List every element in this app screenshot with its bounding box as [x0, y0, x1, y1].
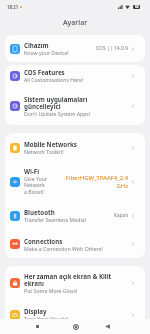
staticText: Don't Update System Apps!	[24, 110, 91, 117]
staticText: Wi-Fi	[24, 167, 40, 175]
button[interactable]: Bluetooth	[5, 201, 145, 230]
staticText: Know your Device!	[24, 49, 69, 56]
button[interactable]: Sistem uygulamaları güncelleyici	[5, 86, 145, 125]
button[interactable]: Her zaman açık ekran & Kilit ekranı	[5, 266, 145, 300]
staticText: Ayarlar	[63, 18, 88, 28]
staticText: Put Some More Gloss!	[24, 287, 78, 294]
staticText: Mobile Networks	[24, 140, 77, 148]
staticText: COS || 14.0.9	[95, 45, 128, 52]
button[interactable]: Mobile Networks	[5, 133, 145, 162]
staticText: 58	[135, 5, 139, 9]
button[interactable]: Recents	[30, 319, 45, 334]
staticText: Sistem uygulamaları güncelleyici	[24, 95, 119, 110]
staticText: Cihazım	[24, 41, 49, 49]
button[interactable]: COS Features	[5, 65, 145, 86]
button[interactable]: Display	[5, 300, 145, 329]
staticText: All Customisations Here!	[24, 76, 84, 83]
button[interactable]: Connections	[5, 230, 145, 258]
staticText: COS Features	[24, 68, 65, 76]
button[interactable]: Home	[68, 319, 83, 334]
staticText: Tune Your Visuals!	[24, 315, 69, 322]
staticText: Bluetooth	[24, 208, 55, 216]
staticText: Make a Connection With Others!	[24, 245, 103, 252]
staticText: Give Your Network a Boost!	[24, 175, 49, 196]
button[interactable]: Back	[100, 319, 115, 334]
staticText: Network Toolkit!	[24, 148, 64, 155]
staticText: Display	[24, 307, 47, 315]
staticText: Connections	[24, 237, 63, 245]
staticText: Transfer Seamless Media!	[24, 216, 87, 223]
button[interactable]: Cihazım	[5, 35, 145, 62]
staticText: 18:21	[7, 4, 19, 10]
staticText: FiberHGW_TPAAF4_2.4GHz	[65, 174, 128, 189]
button[interactable]: Wi-Fi	[5, 162, 145, 201]
staticText: Kapalı	[112, 212, 128, 219]
staticText: Her zaman açık ekran & Kilit ekranı	[24, 272, 119, 287]
